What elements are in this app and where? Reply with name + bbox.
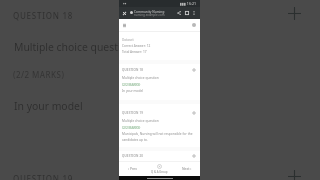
staticText: (2/2 MARKS) [122,126,141,130]
staticText: Municipals, Nursing will not responsible… [122,132,193,136]
button[interactable]: Account [190,21,198,29]
staticText: •• [123,1,127,7]
staticText: candidates up to. [122,138,148,142]
staticText: (2/2 MARKS) [122,83,141,87]
button[interactable]: Q & A Group [146,161,173,176]
staticText: QUESTION 20 [122,154,144,158]
staticText: ‹ Prev [128,166,137,171]
other: Expand section [192,154,196,158]
staticText: Community Nursing: [134,10,166,14]
staticText: nursing.example.com [134,13,165,17]
staticText: Dataset [122,38,134,42]
staticText: (2/2 MARKS) [13,69,65,80]
staticText: Multiple choice question [14,40,134,54]
button[interactable]: ‹ Prev [119,161,146,176]
staticText: Multiple choice question [122,76,159,80]
button[interactable]: Save page [183,9,191,17]
staticText: In your model [14,99,83,113]
button[interactable]: QUESTION 19 [119,108,200,117]
staticText: QUESTION 19 [13,173,73,180]
staticText: Multiple choice question [122,119,159,123]
other: Expand section [192,68,196,72]
staticText: QUESTION 18 [122,68,144,72]
button[interactable]: Next › [173,161,200,176]
button[interactable]: More options [190,9,198,17]
staticText: In your model [122,89,144,93]
staticText: QUESTION 18 [13,10,73,21]
button[interactable]: QUESTION 20 [119,151,200,160]
button[interactable]: Share [175,9,183,17]
staticText: Next › [182,166,192,171]
button[interactable]: QUESTION 18 [119,65,200,74]
staticText: Q & A Group [151,170,168,174]
other: Expand section [192,111,196,115]
staticText: Correct Answer: 12 [122,44,151,48]
staticText: Total Answer: 17 [122,50,147,54]
button[interactable]: Menu [120,21,128,29]
staticText: ▮▮▮ 16:21 [180,1,197,6]
button[interactable]: Close [120,9,128,17]
staticText: QUESTION 19 [122,111,144,115]
